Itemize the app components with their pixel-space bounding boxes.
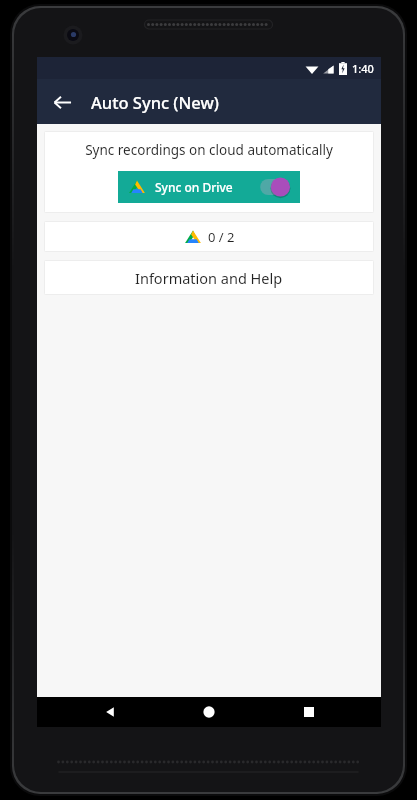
- staticText: Sync on Drive: [155, 179, 233, 195]
- staticText: Sync recordings on cloud automatically: [85, 141, 333, 159]
- staticText: 1:40: [352, 61, 374, 76]
- staticText: 0 / 2: [208, 228, 235, 246]
- staticText: Auto Sync (New): [91, 91, 219, 113]
- button[interactable]: 0 / 2: [44, 221, 374, 252]
- staticText: Information and Help: [135, 268, 283, 288]
- button[interactable]: Information and Help: [44, 260, 374, 295]
- button[interactable]: Home: [182, 697, 236, 727]
- button[interactable]: Recent apps: [282, 697, 336, 727]
- button[interactable]: Back: [83, 697, 137, 727]
- button[interactable]: Back: [43, 83, 81, 121]
- button[interactable]: Sync on Drive: [118, 171, 300, 203]
